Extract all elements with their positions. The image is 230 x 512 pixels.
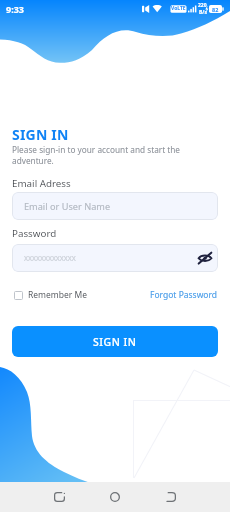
staticText: Remember Me [28,289,88,301]
staticText: Password [12,227,57,240]
staticText: SIGN IN [93,335,137,349]
staticText: SIGN IN [12,125,69,144]
staticText: 9:33 [6,3,24,15]
button[interactable]: Home [95,482,135,512]
staticText: Please sign-in to your account and start… [12,144,184,166]
button[interactable]: Email or User Name [12,192,218,220]
staticText: Forgot Password [150,289,218,301]
staticText: 82 [212,6,219,13]
button[interactable]: Forgot Password [150,287,218,303]
button[interactable]: Back [151,482,191,512]
button[interactable]: Recents [39,482,79,512]
button[interactable]: XXXXXXXXXXXXX [12,244,218,272]
staticText: B/s [199,9,207,16]
button[interactable]: SIGN IN [12,326,218,357]
staticText: VoLTE [171,5,186,12]
staticText: Email Adress [12,177,71,190]
staticText: Email or User Name [24,200,111,213]
staticText: XXXXXXXXXXXXX [24,254,76,263]
staticText: 220 [198,2,207,9]
button[interactable]: Show password [196,249,214,267]
button[interactable]: Remember Me [12,287,88,303]
